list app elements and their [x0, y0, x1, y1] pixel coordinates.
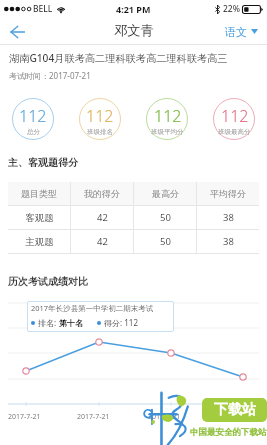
staticText: 班级平均分	[151, 128, 184, 136]
staticText: 112	[154, 105, 182, 127]
staticText: 排名:	[38, 317, 59, 328]
staticText: 38	[223, 235, 234, 248]
staticText: 题目类型	[21, 188, 57, 199]
staticText: 客观题	[25, 212, 54, 224]
staticText: 湖南G104月联考高二理科联考高二理科联考高三	[9, 51, 228, 65]
staticText: 我的得分	[84, 188, 120, 199]
button[interactable]: 语文	[225, 18, 258, 45]
staticText: 主、客观题得分	[8, 156, 78, 169]
staticText: 最高分	[152, 188, 179, 199]
button[interactable]: 112	[12, 98, 54, 140]
staticText: 50	[160, 235, 171, 248]
staticText: 2017-7-21	[77, 412, 110, 422]
staticText: 总分	[27, 128, 40, 136]
staticText: 班级最高分	[218, 128, 251, 136]
staticText: 112	[86, 105, 114, 127]
button[interactable]: Back	[0, 18, 34, 45]
staticText: 得分: 112	[104, 317, 138, 328]
staticText: 2017-7-21	[8, 412, 41, 422]
button[interactable]: 112	[213, 98, 255, 140]
staticText: 50	[160, 211, 171, 224]
staticText: 考试时间：2017-07-21	[9, 70, 91, 81]
staticText: 42	[97, 211, 108, 224]
button[interactable]: 112	[79, 98, 121, 140]
staticText: 历次考试成绩对比	[8, 275, 88, 288]
staticText: 班级排名	[87, 128, 113, 136]
staticText: BELL	[33, 3, 53, 15]
staticText: 下载站	[214, 401, 256, 419]
staticText: 4:21 PM	[116, 3, 151, 15]
button[interactable]: 112	[146, 98, 188, 140]
staticText: 2017-7-21	[219, 412, 252, 422]
staticText: 38	[223, 211, 234, 224]
staticText: 语文	[225, 25, 247, 39]
staticText: 平均得分	[210, 188, 246, 199]
staticText: 第十名	[59, 318, 83, 328]
staticText: 42	[97, 235, 108, 248]
staticText: 112	[221, 105, 249, 127]
staticText: 邓文青	[114, 22, 154, 39]
staticText: 中国最安全的下载站	[190, 427, 267, 438]
staticText: 22%	[223, 3, 240, 15]
staticText: 2017-7-21	[148, 412, 181, 422]
staticText: 112	[19, 105, 47, 127]
staticText: 主观题	[25, 236, 54, 248]
staticText: 2017年长沙县第一中学初二期末考试	[31, 303, 154, 313]
